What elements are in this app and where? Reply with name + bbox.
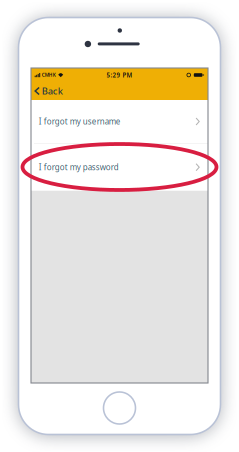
staticText: Back [42,85,63,97]
button[interactable]: I forgot my username [31,100,208,143]
staticText: CMHK [42,72,56,78]
button[interactable]: I forgot my password [31,144,208,191]
staticText: I forgot my username [39,116,121,127]
staticText: I forgot my password [39,162,119,172]
button[interactable]: Back [31,82,68,100]
staticText: 5:29 PM [106,71,132,79]
